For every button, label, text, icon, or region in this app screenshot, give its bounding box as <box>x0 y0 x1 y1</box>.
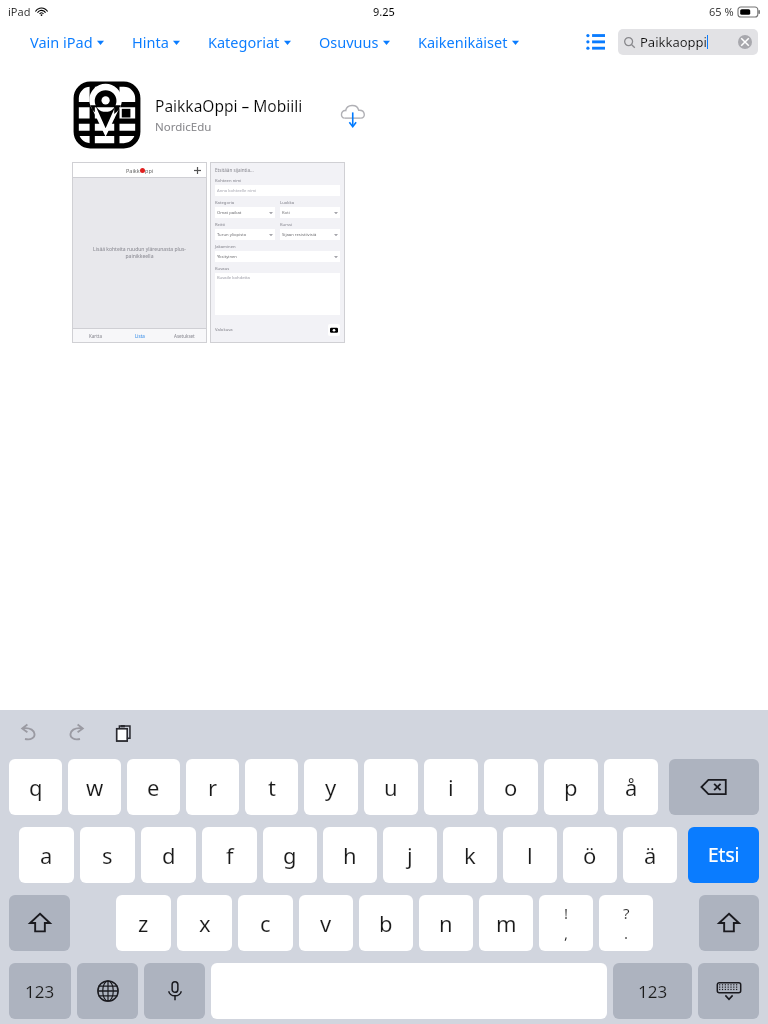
button[interactable]: w <box>68 759 121 815</box>
button[interactable]: i <box>424 759 478 815</box>
staticText: a <box>40 840 53 870</box>
button[interactable]: ! <box>539 895 593 951</box>
staticText: Etsi <box>708 842 740 868</box>
button[interactable]: s <box>80 827 135 883</box>
button[interactable]: Osuvuus <box>319 28 390 56</box>
button[interactable]: f <box>202 827 257 883</box>
button[interactable]: List view <box>578 25 612 59</box>
button[interactable]: Kaikenikäiset <box>418 28 519 56</box>
button[interactable]: ? <box>599 895 653 951</box>
staticText: f <box>226 840 234 870</box>
button[interactable]: Numbers <box>9 963 71 1019</box>
staticText: NordicEdu <box>155 119 212 135</box>
staticText: h <box>343 840 357 870</box>
staticText: 65 % <box>709 4 734 19</box>
staticText: Kategoria <box>215 200 235 206</box>
button[interactable]: Backspace <box>669 759 759 815</box>
staticText: Lisää kohteita ruudun yläreunasta plus-p… <box>81 246 198 260</box>
button[interactable]: Numbers <box>613 963 692 1019</box>
button[interactable]: u <box>364 759 418 815</box>
staticText: e <box>147 772 160 802</box>
button[interactable]: Paikk <box>73 163 206 342</box>
staticText: g <box>283 840 297 870</box>
button[interactable]: p <box>544 759 598 815</box>
staticText: 9.25 <box>373 4 395 19</box>
button[interactable]: PaikkaOppi – Mobiili <box>72 80 768 150</box>
staticText: Reitti <box>215 222 226 228</box>
staticText: Lista <box>135 333 145 339</box>
button[interactable]: Dictate <box>144 963 205 1019</box>
button[interactable]: Shift <box>699 895 759 951</box>
button[interactable]: Hide keyboard <box>698 963 759 1019</box>
staticText: m <box>496 908 517 938</box>
staticText: iPad <box>8 4 31 19</box>
button[interactable]: r <box>186 759 239 815</box>
staticText: w <box>86 772 104 802</box>
button[interactable]: å <box>604 759 658 815</box>
staticText: 123 <box>638 980 668 1003</box>
button[interactable]: z <box>116 895 171 951</box>
button[interactable]: a <box>19 827 74 883</box>
staticText: s <box>102 840 113 870</box>
staticText: k <box>464 840 476 870</box>
button[interactable]: o <box>484 759 538 815</box>
staticText: Kategoriat <box>208 32 280 52</box>
staticText: i <box>448 772 454 802</box>
staticText: Valokuva <box>215 327 233 333</box>
button[interactable]: Etsi <box>688 827 759 883</box>
button[interactable]: j <box>383 827 437 883</box>
staticText: å <box>625 772 638 802</box>
button[interactable]: b <box>359 895 413 951</box>
button[interactable]: d <box>141 827 196 883</box>
button[interactable]: v <box>299 895 353 951</box>
staticText: Asetukset <box>174 333 195 339</box>
button[interactable]: Redo <box>57 714 95 752</box>
staticText: 123 <box>25 980 55 1003</box>
staticText: Omat paikat <box>217 210 242 216</box>
button[interactable]: Hinta <box>132 28 180 56</box>
button[interactable]: Etsitään sijaintia... <box>211 163 344 342</box>
staticText: l <box>527 840 533 870</box>
staticText: . <box>624 923 629 943</box>
button[interactable]: Paikkaoppi <box>618 29 758 55</box>
staticText: PaikkaOppi – Mobiili <box>155 95 303 116</box>
staticText: u <box>384 772 398 802</box>
button[interactable]: t <box>245 759 298 815</box>
button[interactable]: g <box>263 827 317 883</box>
button[interactable]: Kategoriat <box>208 28 291 56</box>
button[interactable]: Change keyboard <box>77 963 138 1019</box>
staticText: z <box>138 908 149 938</box>
staticText: q <box>29 772 43 802</box>
staticText: c <box>260 908 271 938</box>
button[interactable]: Undo <box>10 714 48 752</box>
button[interactable]: Download <box>333 95 373 135</box>
button[interactable]: h <box>323 827 377 883</box>
button[interactable]: ö <box>563 827 617 883</box>
button[interactable]: k <box>443 827 497 883</box>
staticText: Koti <box>282 210 290 216</box>
staticText: ö <box>583 840 597 870</box>
button[interactable]: m <box>479 895 533 951</box>
staticText: ? <box>623 903 630 923</box>
staticText: Sijaan resistiivisiä <box>282 232 317 238</box>
staticText: ! <box>564 903 569 923</box>
button[interactable]: n <box>419 895 473 951</box>
button[interactable]: l <box>503 827 557 883</box>
button[interactable]: x <box>177 895 232 951</box>
button[interactable]: ä <box>623 827 677 883</box>
button[interactable]: Vain iPad <box>30 28 104 56</box>
staticText: Kaikenikäiset <box>418 32 508 52</box>
button[interactable]: Shift <box>9 895 70 951</box>
staticText: Paikkaoppi <box>640 33 707 51</box>
staticText: t <box>268 772 276 802</box>
staticText: Kartta <box>89 333 102 339</box>
button[interactable]: q <box>9 759 62 815</box>
button[interactable]: Paste <box>104 714 142 752</box>
staticText: Yksityinen <box>217 254 237 260</box>
staticText: Kuvaile kohdetta <box>217 275 250 281</box>
button[interactable]: y <box>304 759 358 815</box>
button[interactable]: c <box>238 895 293 951</box>
button[interactable]: e <box>127 759 180 815</box>
button[interactable]: Clear search <box>738 35 752 49</box>
